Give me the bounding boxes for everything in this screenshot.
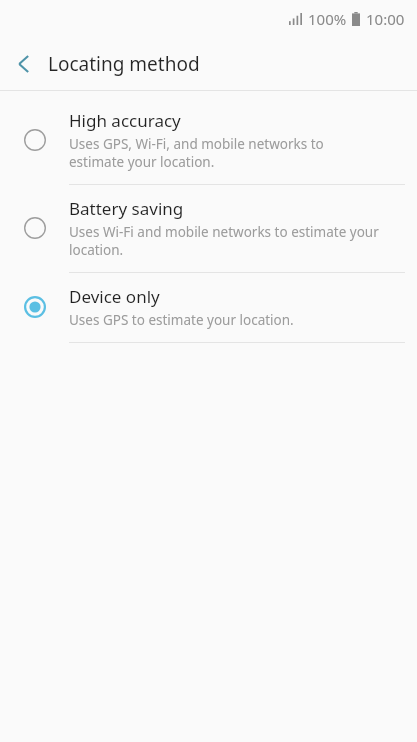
button[interactable]: Battery saving	[0, 185, 417, 272]
staticText: 100%	[308, 9, 347, 29]
staticText: Uses GPS, Wi-Fi, and mobile networks to …	[69, 135, 324, 171]
button[interactable]: Device only	[0, 273, 417, 342]
staticText: Locating method	[48, 51, 200, 77]
staticText: Uses Wi-Fi and mobile networks to estima…	[69, 223, 379, 259]
button[interactable]: Back	[0, 38, 48, 90]
staticText: Uses GPS to estimate your location.	[69, 311, 294, 329]
staticText: Battery saving	[69, 197, 184, 220]
button[interactable]: High accuracy	[0, 97, 417, 184]
staticText: High accuracy	[69, 109, 181, 132]
staticText: Device only	[69, 285, 160, 308]
staticText: 10:00	[366, 9, 405, 29]
